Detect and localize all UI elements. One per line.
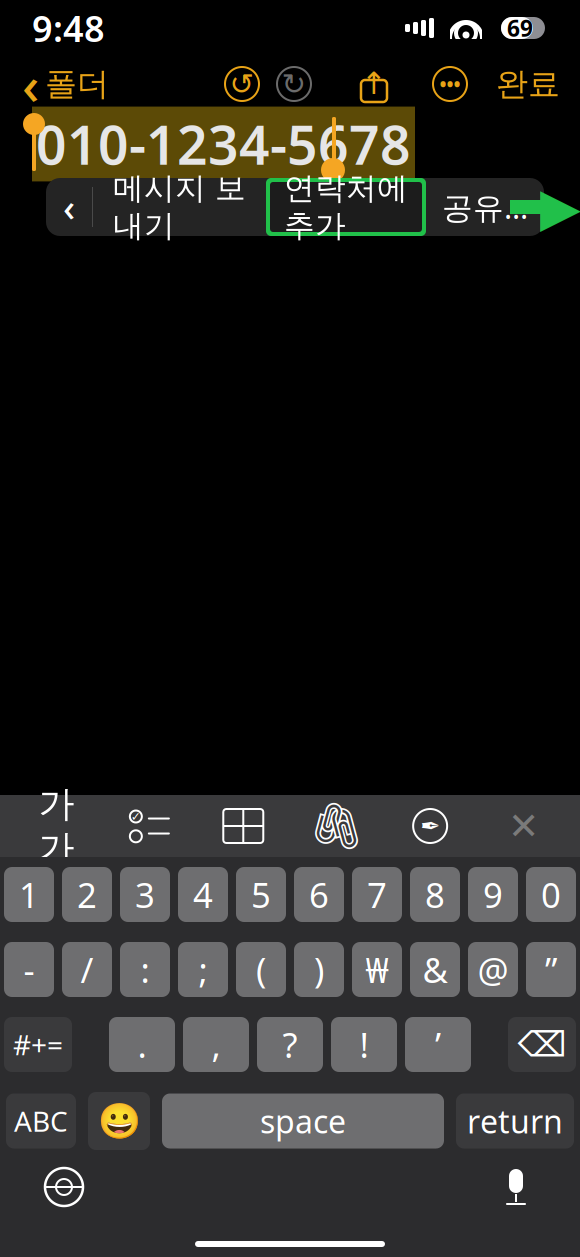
staticText: & bbox=[422, 946, 447, 992]
staticText: 1 bbox=[19, 871, 39, 917]
button[interactable]: #+= bbox=[4, 1017, 72, 1072]
staticText: 메시지 보내기 bbox=[113, 169, 246, 245]
staticText: ••• bbox=[439, 72, 460, 96]
staticText: @ bbox=[477, 946, 508, 992]
button[interactable]: ’ bbox=[405, 1017, 471, 1072]
button[interactable]: 닫기 bbox=[489, 798, 559, 854]
button[interactable]: @ bbox=[468, 942, 518, 997]
staticText: ! bbox=[359, 1021, 368, 1067]
button[interactable]: return bbox=[456, 1093, 574, 1148]
button[interactable]: space bbox=[162, 1093, 444, 1148]
button[interactable]: ” bbox=[526, 942, 576, 997]
button[interactable]: 6 bbox=[294, 867, 344, 922]
staticText: . bbox=[137, 1021, 146, 1067]
staticText: space bbox=[260, 1100, 346, 1142]
staticText: ABC bbox=[14, 1102, 68, 1140]
button[interactable]: 지우기 bbox=[508, 1017, 576, 1072]
button[interactable]: ABC bbox=[6, 1093, 76, 1148]
button[interactable]: 3 bbox=[120, 867, 170, 922]
button[interactable]: . bbox=[109, 1017, 175, 1072]
button[interactable]: 공유... bbox=[426, 178, 544, 236]
button[interactable]: 이모티콘 bbox=[88, 1092, 150, 1150]
button[interactable]: 공유 bbox=[348, 58, 400, 110]
staticText: ₩ bbox=[365, 946, 388, 992]
staticText: 완료 bbox=[496, 64, 560, 104]
staticText: 공유... bbox=[442, 187, 528, 227]
staticText: ( bbox=[256, 946, 266, 992]
staticText: 🖇 bbox=[308, 800, 366, 852]
button[interactable]: 다시 실행 bbox=[268, 58, 320, 110]
staticText: ✒ bbox=[420, 812, 440, 840]
button[interactable]: 체크리스트 bbox=[115, 798, 185, 854]
staticText: ↺ bbox=[229, 67, 254, 101]
staticText: ‹ bbox=[22, 49, 39, 119]
button[interactable]: 키보드 전환 bbox=[34, 1157, 94, 1217]
button[interactable]: 2 bbox=[62, 867, 112, 922]
staticText: ? bbox=[282, 1021, 297, 1067]
button[interactable]: ? bbox=[257, 1017, 323, 1072]
staticText: return bbox=[467, 1100, 563, 1142]
staticText: ” bbox=[545, 946, 557, 992]
staticText: 5 bbox=[251, 871, 271, 917]
button[interactable]: 7 bbox=[352, 867, 402, 922]
button[interactable]: 텍스트 서식 bbox=[21, 798, 91, 854]
staticText: : bbox=[140, 946, 149, 992]
button[interactable]: 8 bbox=[410, 867, 460, 922]
staticText: ✓ bbox=[131, 810, 141, 823]
button[interactable]: 완료 bbox=[492, 58, 564, 110]
button[interactable]: , bbox=[183, 1017, 249, 1072]
staticText: 6 bbox=[309, 871, 329, 917]
staticText: 2 bbox=[77, 871, 97, 917]
staticText: 4 bbox=[193, 871, 213, 917]
staticText: 8 bbox=[425, 871, 445, 917]
button[interactable]: 5 bbox=[236, 867, 286, 922]
button[interactable]: 1 bbox=[4, 867, 54, 922]
staticText: , bbox=[211, 1021, 220, 1067]
staticText: - bbox=[23, 946, 34, 992]
staticText: 연락처에 추가 bbox=[284, 169, 408, 245]
button[interactable]: / bbox=[62, 942, 112, 997]
button[interactable]: : bbox=[120, 942, 170, 997]
staticText: / bbox=[80, 946, 93, 992]
staticText: ↻ bbox=[281, 67, 306, 101]
staticText: 9:48 bbox=[32, 4, 105, 52]
button[interactable]: ₩ bbox=[352, 942, 402, 997]
staticText: 폴더 bbox=[45, 64, 109, 104]
staticText: ✕ bbox=[508, 805, 539, 847]
staticText: ’ bbox=[435, 1021, 441, 1067]
button[interactable]: ; bbox=[178, 942, 228, 997]
button[interactable]: 연락처에 추가 bbox=[266, 178, 426, 236]
button[interactable]: 이전 bbox=[46, 178, 92, 236]
staticText: ‹ bbox=[63, 182, 75, 232]
button[interactable]: 첨부 bbox=[302, 798, 372, 854]
button[interactable]: - bbox=[4, 942, 54, 997]
staticText: ↑ bbox=[361, 66, 387, 101]
staticText: ; bbox=[198, 946, 207, 992]
staticText: 69 bbox=[507, 13, 533, 43]
button[interactable]: 4 bbox=[178, 867, 228, 922]
button[interactable]: 추가 작업 bbox=[424, 58, 476, 110]
button[interactable]: & bbox=[410, 942, 460, 997]
staticText: #+= bbox=[13, 1026, 63, 1063]
button[interactable]: ) bbox=[294, 942, 344, 997]
button[interactable]: 9 bbox=[468, 867, 518, 922]
staticText: 010-1234-5678 bbox=[36, 109, 411, 179]
button[interactable]: ‹ bbox=[16, 58, 115, 110]
button[interactable]: ! bbox=[331, 1017, 397, 1072]
staticText: ▶ bbox=[540, 177, 580, 237]
staticText: 7 bbox=[367, 871, 387, 917]
button[interactable]: 메시지 보내기 bbox=[93, 178, 266, 236]
staticText: ⌫ bbox=[517, 1025, 566, 1064]
button[interactable]: 실행 취소 bbox=[216, 58, 268, 110]
button[interactable]: 표 bbox=[208, 798, 278, 854]
button[interactable]: 받아쓰기 bbox=[486, 1157, 546, 1217]
button[interactable]: 0 bbox=[526, 867, 576, 922]
staticText: 3 bbox=[135, 871, 155, 917]
staticText: 0 bbox=[541, 871, 561, 917]
staticText: ) bbox=[314, 946, 324, 992]
button[interactable]: ( bbox=[236, 942, 286, 997]
button[interactable]: 마크업 bbox=[395, 798, 465, 854]
staticText: 가가 bbox=[38, 782, 74, 870]
staticText: 9 bbox=[483, 871, 503, 917]
staticText: 😀 bbox=[97, 1101, 140, 1141]
